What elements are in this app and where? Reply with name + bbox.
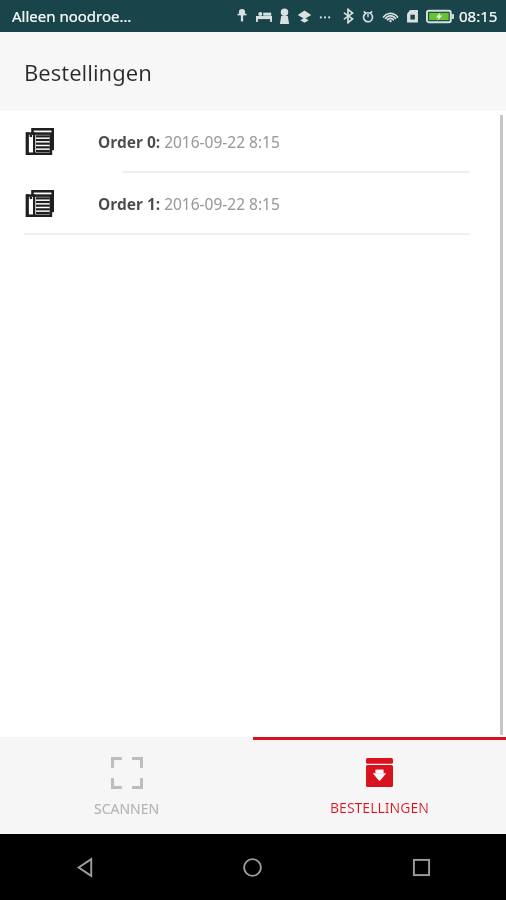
staticText: SCANNEN <box>94 799 160 818</box>
staticText: Alleen noodroe… <box>12 6 132 26</box>
button[interactable]: Home <box>168 834 337 900</box>
staticText: Order 1: 2016-09-22 8:15 <box>98 193 280 214</box>
other: Bestellingen <box>366 758 393 787</box>
button[interactable]: Bestellingen <box>253 740 506 834</box>
staticText: BESTELLINGEN <box>330 798 429 817</box>
button[interactable]: Order 1: 2016-09-22 8:15 <box>0 173 506 235</box>
button[interactable]: Order 0: 2016-09-22 8:15 <box>0 111 506 173</box>
button[interactable]: Back <box>0 834 168 900</box>
staticText: Bestellingen <box>24 57 152 87</box>
staticText: 08:15 <box>459 6 498 26</box>
other: Scannen <box>111 757 143 789</box>
staticText: Order 0: 2016-09-22 8:15 <box>98 131 280 152</box>
button[interactable]: Scannen <box>0 740 253 834</box>
button[interactable]: Recents <box>337 834 506 900</box>
